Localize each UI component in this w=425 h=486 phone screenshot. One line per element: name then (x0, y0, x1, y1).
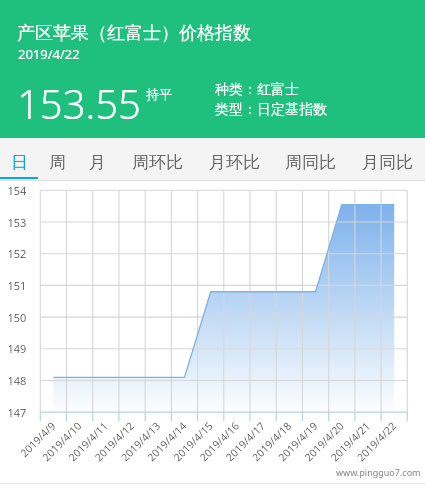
button[interactable]: 月环比 (195, 138, 272, 179)
button[interactable]: 周 (36, 138, 76, 179)
staticText: 产区苹果（红富士）价格指数 (17, 22, 251, 45)
staticText: 月 (89, 152, 106, 173)
button[interactable]: 日 (0, 138, 36, 179)
staticText: www.pingguo7.com (336, 466, 421, 478)
staticText: 持平 (146, 86, 172, 102)
staticText: 153.55 (17, 76, 141, 130)
staticText: 类型：日定基指数 (215, 101, 327, 119)
staticText: 2019/4/22 (18, 45, 80, 63)
staticText: 月同比 (362, 152, 413, 173)
staticText: 月环比 (209, 152, 260, 173)
staticText: 周同比 (285, 152, 336, 173)
staticText: 日 (11, 152, 28, 173)
staticText: 周 (49, 152, 66, 173)
staticText: 种类：红富士 (215, 81, 299, 99)
button[interactable]: 周同比 (272, 138, 348, 179)
button[interactable]: 月同比 (348, 138, 425, 179)
button[interactable]: 周环比 (115, 138, 195, 179)
button[interactable]: 月 (76, 138, 115, 179)
staticText: 周环比 (132, 152, 183, 173)
